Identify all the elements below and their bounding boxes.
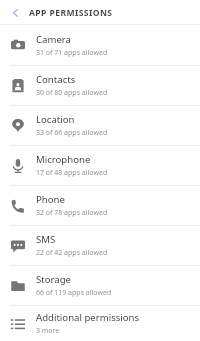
staticText: APP PERMISSIONS [29,7,113,19]
button[interactable]: Back [6,3,26,23]
staticText: 22 of 42 apps allowed [36,248,108,258]
staticText: SMS [36,233,56,246]
button[interactable]: Camera [0,25,200,65]
staticText: 3 more [36,326,60,336]
button[interactable]: Microphone [0,146,200,185]
button[interactable]: Additional permissions [0,306,200,341]
button[interactable]: Phone [0,186,200,225]
button[interactable]: SMS [0,226,200,265]
staticText: Microphone [36,153,91,166]
button[interactable]: Contacts [0,66,200,105]
staticText: 30 of 80 apps allowed [36,88,108,98]
staticText: 66 of 119 apps allowed [36,288,112,298]
staticText: 17 of 48 apps allowed [36,168,108,178]
button[interactable]: Storage [0,266,200,305]
staticText: Contacts [36,73,76,86]
button[interactable]: Location [0,106,200,145]
staticText: Phone [36,193,65,206]
staticText: 31 of 71 apps allowed [36,48,108,58]
staticText: 33 of 66 apps allowed [36,128,108,138]
staticText: Storage [36,273,71,286]
staticText: Location [36,113,75,126]
staticText: Additional permissions [36,311,140,324]
staticText: 32 of 78 apps allowed [36,208,108,218]
staticText: Camera [36,33,71,46]
